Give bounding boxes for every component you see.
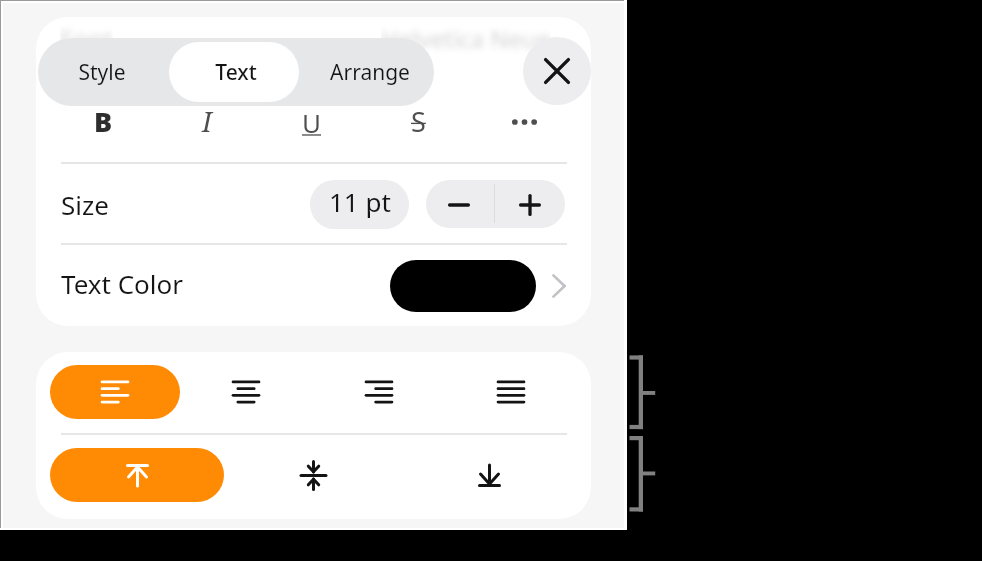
button[interactable]: I xyxy=(177,99,237,143)
button[interactable]: Open color options xyxy=(545,266,573,306)
button[interactable]: Align right xyxy=(324,365,434,419)
staticText: Size xyxy=(61,187,109,222)
staticText: I xyxy=(202,103,212,140)
button[interactable]: B xyxy=(73,99,133,143)
staticText: Style xyxy=(78,58,126,87)
staticText: Text Color xyxy=(61,266,184,301)
button[interactable]: Style xyxy=(35,38,168,106)
button[interactable]: More text options xyxy=(494,102,554,142)
staticText: Text xyxy=(215,58,257,87)
button[interactable]: Text color xyxy=(390,260,536,312)
button[interactable]: Arrange xyxy=(302,38,437,106)
button[interactable]: Align bottom xyxy=(434,448,544,502)
button[interactable]: Align left xyxy=(50,365,180,419)
button[interactable]: Increase font size xyxy=(495,181,565,229)
button[interactable]: U xyxy=(282,100,342,144)
staticText: B xyxy=(94,103,113,140)
staticText: Font xyxy=(60,22,113,56)
button[interactable]: Justify xyxy=(456,365,566,419)
staticText: U xyxy=(302,105,322,140)
button[interactable]: Align top xyxy=(50,448,224,502)
button[interactable]: 11 pt xyxy=(310,180,409,229)
button[interactable]: S xyxy=(388,99,448,143)
staticText: 11 pt xyxy=(329,184,391,219)
staticText: Arrange xyxy=(330,58,410,87)
button[interactable]: Close xyxy=(523,37,591,105)
staticText: S xyxy=(411,103,426,140)
button[interactable]: Decrease font size xyxy=(425,181,493,229)
button[interactable]: Align center xyxy=(191,365,301,419)
staticText: Helvetica Neue xyxy=(381,22,551,55)
button[interactable]: Align middle xyxy=(258,448,368,502)
button[interactable]: Text xyxy=(171,38,301,106)
